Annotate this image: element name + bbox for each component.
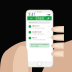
staticText: Messages are end-to-end encrypted bbox=[30, 43, 48, 47]
button[interactable]: New chat bbox=[46, 16, 51, 20]
staticText: Shipped the new build bbox=[32, 33, 45, 35]
staticText: Nina Patel bbox=[32, 25, 39, 27]
staticText: Perfect, see you then bbox=[32, 27, 45, 29]
button[interactable]: Marco bbox=[27, 36, 52, 41]
staticText: Search bbox=[31, 22, 37, 23]
staticText: 9:32 bbox=[47, 25, 50, 27]
staticText: Chats bbox=[35, 17, 43, 20]
button[interactable]: Design Team bbox=[27, 30, 52, 36]
staticText: Design Team bbox=[32, 31, 41, 33]
button[interactable]: Edit bbox=[28, 16, 33, 20]
staticText: Thanks for the help bbox=[32, 39, 45, 41]
staticText: 9:41 bbox=[29, 13, 36, 16]
button[interactable]: Nina Patel bbox=[27, 24, 52, 30]
staticText: 8:14 bbox=[47, 31, 50, 33]
button[interactable]: Search bbox=[28, 21, 50, 24]
staticText: Marco bbox=[32, 37, 37, 39]
staticText: Yest bbox=[47, 37, 50, 39]
staticText: Edit bbox=[30, 17, 32, 19]
